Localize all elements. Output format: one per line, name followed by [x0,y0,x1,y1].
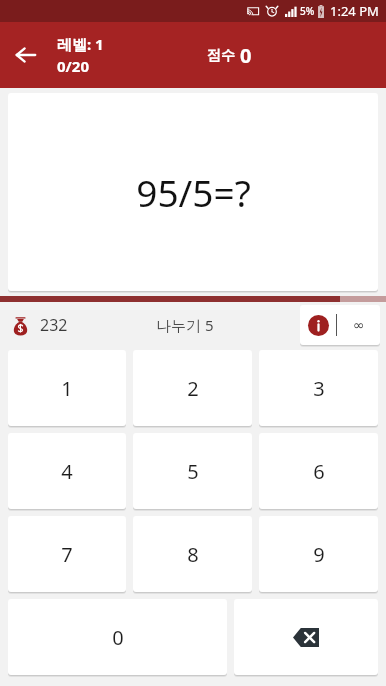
staticText: 4 [61,458,73,485]
staticText: 레벨: 1 [57,34,104,54]
button[interactable]: 9 [259,516,378,592]
staticText: 95/5=? [136,167,251,217]
staticText: 5% [300,4,315,18]
button[interactable]: 2 [133,350,252,426]
button[interactable]: Back [0,22,52,88]
button[interactable]: 7 [8,516,126,592]
button[interactable]: 0 [8,599,227,675]
staticText: 1:24 PM [330,2,379,20]
button[interactable]: 3 [259,350,378,426]
button[interactable]: 8 [133,516,252,592]
staticText: 2 [187,375,199,402]
staticText: 9 [313,541,325,568]
staticText: 3 [313,375,325,402]
staticText: ∞ [353,317,365,333]
staticText: 0 [112,624,124,651]
button[interactable]: 4 [8,433,126,509]
staticText: 7 [61,541,73,568]
staticText: 6 [313,458,325,485]
button[interactable]: 6 [259,433,378,509]
staticText: 나누기 5 [156,315,214,335]
staticText: 232 [40,314,68,336]
staticText: 5 [187,458,199,485]
staticText: 0/20 [57,56,89,76]
button[interactable]: Backspace [234,599,378,675]
button[interactable]: 1 [8,350,126,426]
button[interactable]: Hints [300,305,380,345]
button[interactable]: 5 [133,433,252,509]
staticText: 0 [240,42,252,69]
staticText: 8 [187,541,199,568]
staticText: 1 [61,375,73,402]
staticText: 점수 [207,47,235,65]
